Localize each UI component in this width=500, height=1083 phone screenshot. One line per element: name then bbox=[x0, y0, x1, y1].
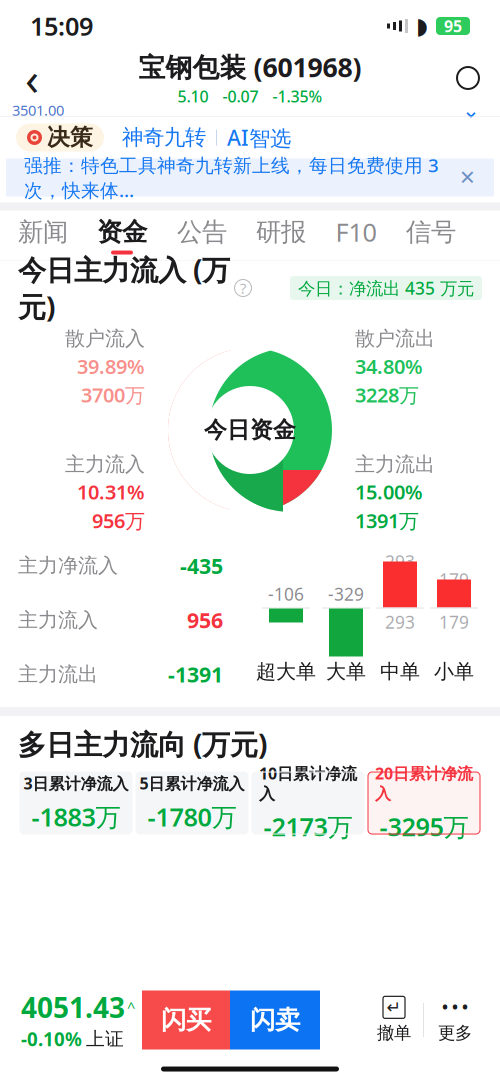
staticText: 散户流出 bbox=[355, 326, 435, 351]
staticText: 宝钢包装 (601968) bbox=[138, 49, 361, 85]
staticText: 956万 bbox=[92, 507, 145, 534]
button[interactable]: F10 bbox=[320, 210, 392, 260]
button[interactable]: 公告 bbox=[162, 210, 242, 260]
staticText: ✕ bbox=[459, 166, 476, 189]
staticText: -2173万 bbox=[263, 810, 352, 843]
staticText: 超大单 bbox=[256, 659, 316, 684]
staticText: 大单 bbox=[326, 659, 366, 684]
button[interactable]: 闪卖 bbox=[230, 990, 320, 1049]
staticText: 主力流出 bbox=[18, 662, 98, 687]
button[interactable]: AI智选 bbox=[227, 123, 291, 152]
staticText: 15:09 bbox=[30, 9, 93, 43]
button[interactable]: 信号 bbox=[392, 210, 470, 260]
staticText: • • • bbox=[442, 996, 468, 1017]
staticText: 主力流出 bbox=[355, 452, 435, 477]
staticText: -0.10% bbox=[21, 1027, 82, 1051]
button[interactable]: Search bbox=[446, 56, 490, 100]
staticText: 3228万 bbox=[355, 381, 419, 408]
staticText: 撤单 bbox=[377, 1022, 411, 1044]
staticText: 神奇九转 bbox=[122, 124, 206, 151]
staticText: 20日累计净流入 bbox=[375, 763, 473, 804]
button[interactable]: 闪买 bbox=[142, 990, 230, 1049]
staticText: 179 bbox=[439, 610, 469, 633]
staticText: 公告 bbox=[177, 216, 227, 247]
button[interactable]: 强推：特色工具神奇九转新上线，每日免费使用 3 次，快来体… bbox=[6, 158, 494, 196]
staticText: 39.89% bbox=[77, 353, 145, 379]
staticText: -3295万 bbox=[379, 810, 468, 843]
staticText: 10日累计净流入 bbox=[259, 763, 357, 804]
staticText: 中单 bbox=[380, 659, 420, 684]
staticText: 5.10 bbox=[177, 86, 208, 107]
staticText: -329 bbox=[328, 582, 364, 605]
staticText: 闪卖 bbox=[250, 1004, 300, 1035]
staticText: -1391 bbox=[168, 660, 223, 688]
button[interactable]: 新闻 bbox=[4, 210, 82, 260]
staticText: 主力流入 bbox=[65, 452, 145, 477]
staticText: 多日主力流向 (万元) bbox=[18, 725, 267, 763]
staticText: -0.07 bbox=[222, 86, 258, 107]
button[interactable]: 5日累计净流入 bbox=[136, 772, 248, 834]
staticText: ‹ bbox=[25, 48, 39, 108]
staticText: 1391万 bbox=[355, 507, 419, 534]
staticText: 今日资金 bbox=[204, 416, 296, 444]
staticText: 强推：特色工具神奇九转新上线，每日免费使用 3 次，快来体… bbox=[24, 153, 439, 202]
staticText: 新闻 bbox=[18, 216, 68, 247]
button[interactable]: Back bbox=[10, 56, 54, 100]
staticText: 10.31% bbox=[77, 479, 145, 505]
button[interactable]: 20日累计净流入 bbox=[368, 772, 480, 834]
staticText: 956 bbox=[187, 606, 223, 634]
staticText: ^ bbox=[127, 997, 135, 1017]
button[interactable]: Help bbox=[230, 275, 256, 301]
staticText: 信号 bbox=[406, 216, 456, 247]
staticText: 179 bbox=[439, 568, 469, 591]
staticText: 主力流入 bbox=[18, 608, 98, 632]
staticText: 95 bbox=[444, 15, 462, 37]
staticText: 资金 bbox=[97, 216, 147, 247]
staticText: ⌄ bbox=[462, 98, 480, 122]
staticText: ◗ bbox=[416, 13, 428, 39]
staticText: F10 bbox=[335, 215, 376, 249]
button[interactable]: ↵ bbox=[365, 990, 423, 1050]
staticText: -1.35% bbox=[272, 86, 322, 107]
staticText: -1883万 bbox=[31, 800, 120, 833]
staticText: 闪买 bbox=[161, 1004, 211, 1035]
staticText: -106 bbox=[268, 582, 304, 605]
staticText: 3501.00 bbox=[12, 100, 64, 120]
button[interactable]: 神奇九转 bbox=[104, 124, 206, 151]
staticText: AI智选 bbox=[227, 123, 291, 152]
staticText: 293 bbox=[385, 550, 415, 573]
button[interactable]: 资金 bbox=[82, 210, 162, 260]
staticText: -435 bbox=[180, 551, 223, 580]
staticText: 更多 bbox=[438, 1022, 472, 1044]
staticText: 研报 bbox=[256, 216, 306, 247]
staticText: 15.00% bbox=[355, 479, 423, 505]
button[interactable]: • • • bbox=[424, 990, 486, 1050]
staticText: 决策 bbox=[47, 124, 93, 151]
staticText: -1780万 bbox=[147, 800, 236, 833]
button[interactable]: 3日累计净流入 bbox=[20, 772, 132, 834]
staticText: 4051.43 bbox=[21, 988, 125, 1026]
staticText: 3日累计净流入 bbox=[23, 773, 128, 794]
staticText: 5日累计净流入 bbox=[139, 773, 244, 794]
staticText: 3700万 bbox=[81, 381, 145, 408]
staticText: ? bbox=[240, 278, 246, 298]
staticText: 今日：净流出 435 万元 bbox=[298, 276, 474, 299]
staticText: 散户流入 bbox=[65, 326, 145, 351]
staticText: 34.80% bbox=[355, 353, 423, 379]
staticText: 小单 bbox=[434, 659, 474, 684]
staticText: 293 bbox=[385, 610, 415, 633]
button[interactable]: 决策 bbox=[16, 123, 104, 151]
button[interactable]: 研报 bbox=[242, 210, 320, 260]
staticText: 上证 bbox=[86, 1028, 124, 1050]
button[interactable]: 10日累计净流入 bbox=[252, 772, 364, 834]
staticText: 主力净流入 bbox=[18, 553, 118, 578]
button[interactable]: 4051.43 bbox=[14, 990, 142, 1050]
staticText: ↵ bbox=[386, 997, 401, 1017]
staticText: 今日主力流入 (万元) bbox=[18, 251, 230, 325]
